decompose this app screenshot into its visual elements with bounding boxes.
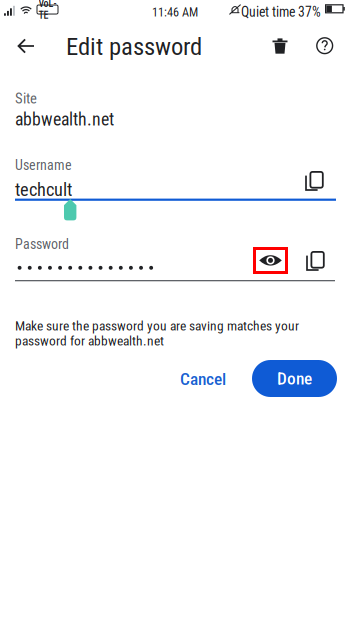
button[interactable]: Show password bbox=[253, 247, 288, 274]
staticText: 11:46 AM bbox=[152, 5, 198, 19]
staticText: abbwealth.net bbox=[15, 109, 114, 130]
staticText: Done bbox=[277, 368, 312, 389]
button[interactable]: Cancel bbox=[170, 361, 236, 397]
staticText: Site bbox=[15, 90, 37, 107]
staticText: Quiet time 37% bbox=[241, 4, 321, 20]
button[interactable]: Copy password bbox=[306, 251, 325, 271]
button[interactable]: Copy username bbox=[305, 171, 324, 191]
staticText: Password bbox=[15, 236, 69, 252]
button[interactable]: Back bbox=[4, 24, 48, 68]
staticText: password for abbwealth.net bbox=[15, 333, 164, 349]
button[interactable]: Delete password bbox=[258, 24, 302, 68]
staticText: techcult bbox=[15, 179, 72, 200]
staticText: Username bbox=[15, 157, 72, 173]
button[interactable]: Help bbox=[303, 24, 347, 68]
button[interactable]: Done bbox=[252, 360, 337, 397]
staticText: Make sure the password you are saving ma… bbox=[15, 318, 299, 334]
staticText: VoLTE bbox=[38, 0, 56, 21]
staticText: Edit password bbox=[66, 32, 202, 61]
staticText: Cancel bbox=[180, 369, 226, 389]
